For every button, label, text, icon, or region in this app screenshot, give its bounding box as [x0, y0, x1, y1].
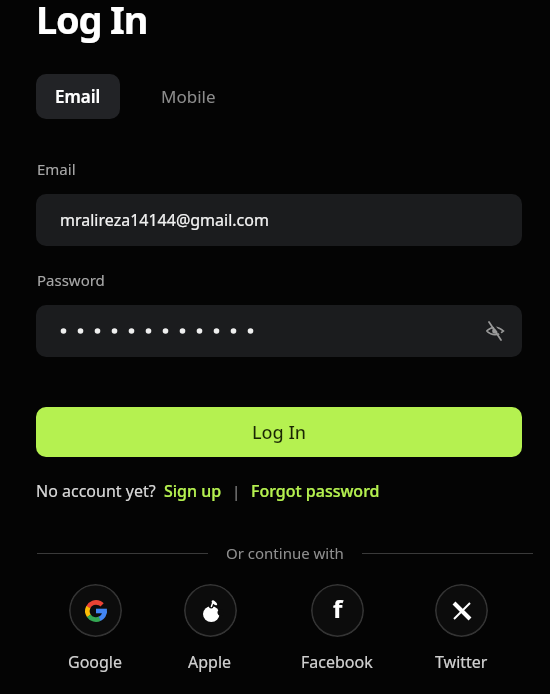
- staticText: Mobile: [161, 85, 216, 108]
- button[interactable]: Forgot password: [251, 480, 380, 502]
- staticText: f: [333, 592, 343, 625]
- button[interactable]: [36, 305, 522, 357]
- button[interactable]: Google: [50, 584, 140, 673]
- button[interactable]: Twitter: [416, 584, 506, 673]
- staticText: Forgot password: [251, 480, 380, 502]
- button[interactable]: Mobile: [150, 74, 226, 119]
- button[interactable]: mralireza14144@gmail.com: [36, 194, 522, 246]
- staticText: Email: [37, 159, 76, 179]
- staticText: |: [232, 481, 241, 501]
- button[interactable]: Apple: [165, 584, 255, 673]
- staticText: Password: [37, 270, 105, 290]
- button[interactable]: [485, 321, 505, 341]
- button[interactable]: f: [292, 584, 382, 673]
- staticText: Email: [55, 85, 101, 108]
- staticText: mralireza14144@gmail.com: [60, 209, 269, 231]
- staticText: Apple: [188, 651, 232, 673]
- staticText: Facebook: [301, 651, 373, 673]
- staticText: Sign up: [164, 480, 222, 502]
- staticText: Log In: [36, 0, 148, 45]
- button[interactable]: Log In: [36, 407, 522, 457]
- button[interactable]: Email: [36, 74, 120, 119]
- staticText: Google: [68, 651, 123, 673]
- staticText: Or continue with: [226, 543, 344, 563]
- staticText: Twitter: [435, 651, 488, 673]
- button[interactable]: Sign up: [164, 480, 222, 502]
- staticText: Log In: [252, 420, 307, 445]
- staticText: No account yet?: [36, 480, 156, 502]
